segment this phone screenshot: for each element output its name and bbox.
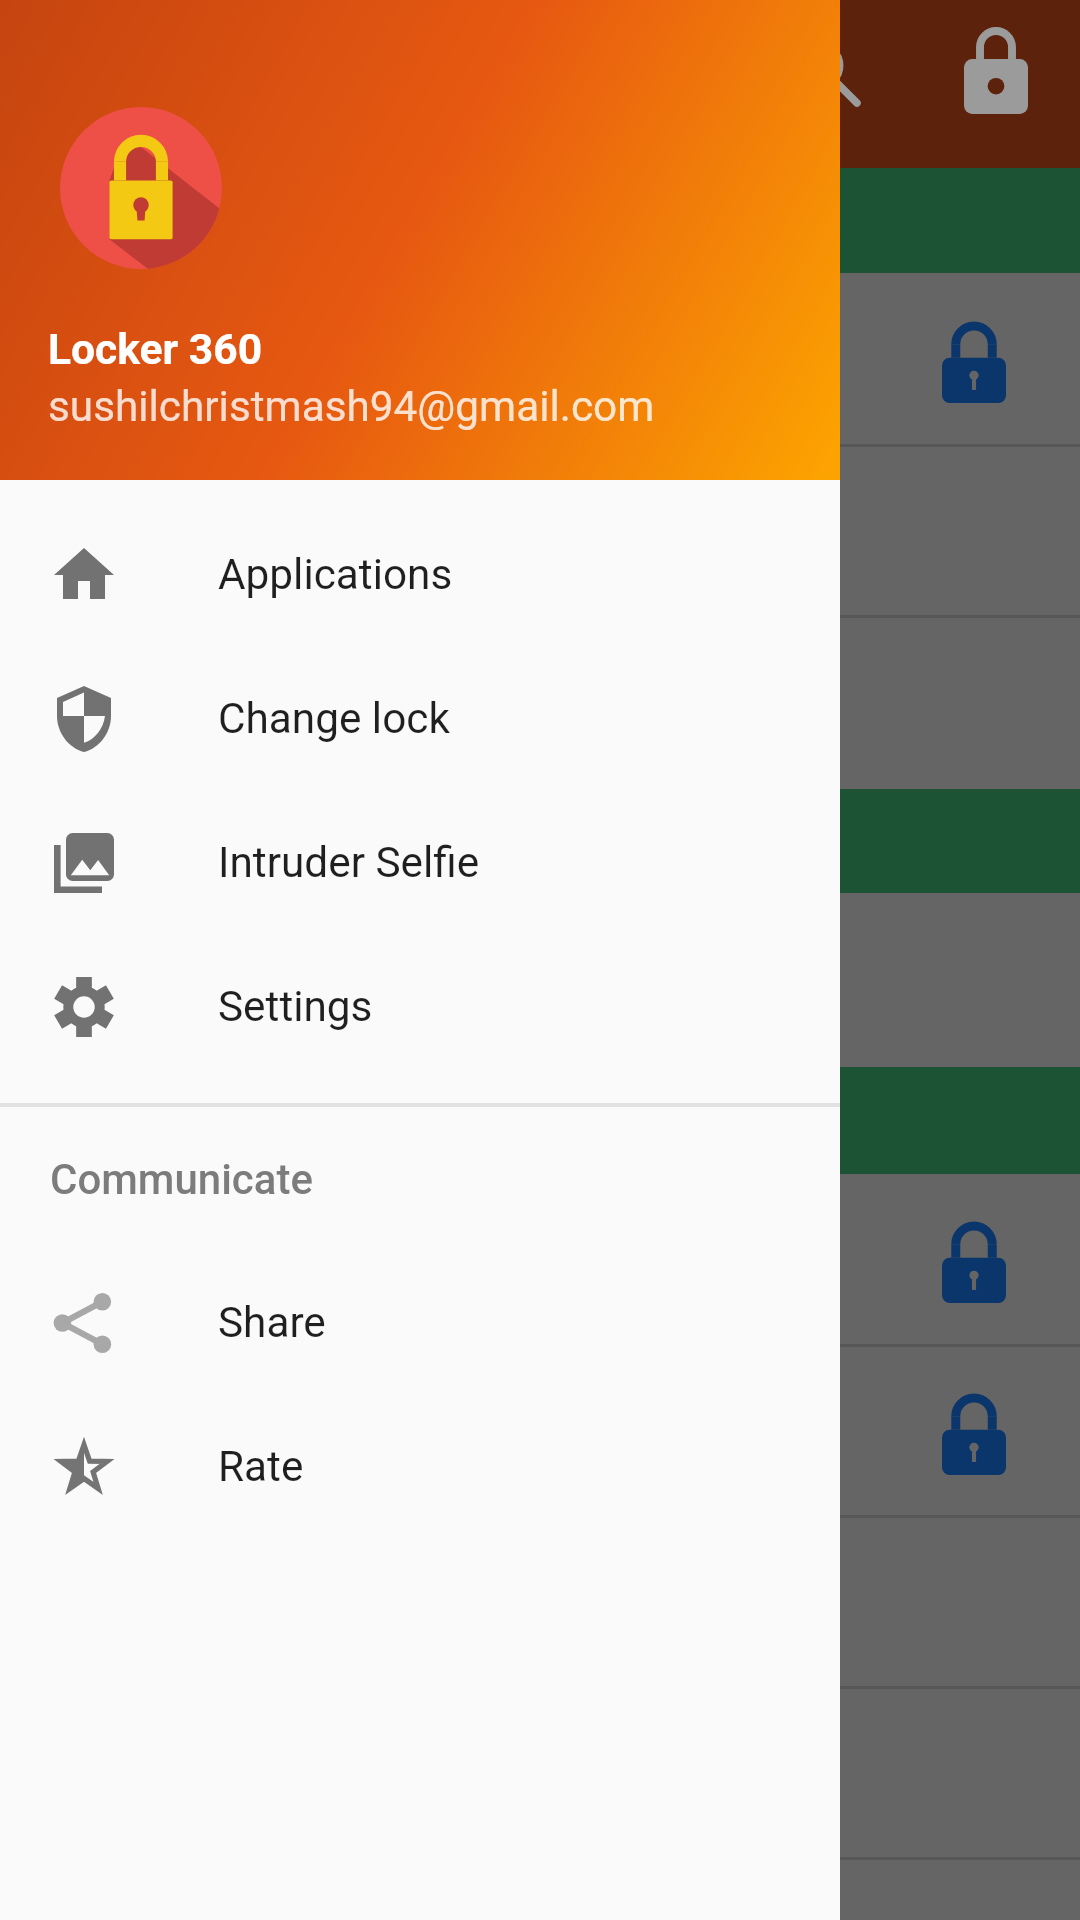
button[interactable]: Intruder Selfie [0,791,840,935]
staticText: Communicate [50,1155,313,1204]
button[interactable]: App entry [0,1174,1080,1347]
button[interactable]: Change lock [0,647,840,791]
button[interactable]: App entry [0,273,1080,447]
button[interactable]: Lock [924,0,1068,144]
staticText: Applications [218,550,453,600]
button[interactable]: Applications [0,503,840,647]
button[interactable]: App entry [0,1347,1080,1518]
staticText: Locker 360 [48,324,263,374]
button[interactable]: Rate [0,1395,840,1539]
staticText: Share [218,1298,326,1348]
staticText: Settings [218,982,373,1032]
button[interactable]: App entry [0,447,1080,618]
button[interactable]: App entry [0,1518,1080,1689]
button[interactable]: Search [754,0,898,144]
button[interactable]: App entry [0,893,1080,1067]
button[interactable]: App entry [0,1860,1080,1920]
button[interactable]: App entry [0,618,1080,789]
staticText: sushilchristmash94@gmail.com [48,382,655,432]
staticText: Intruder Selfie [218,838,480,888]
button[interactable]: App entry [0,1689,1080,1860]
button[interactable]: Share [0,1251,840,1395]
staticText: Change lock [218,694,450,744]
staticText: Rate [218,1442,304,1492]
button[interactable]: Settings [0,935,840,1079]
